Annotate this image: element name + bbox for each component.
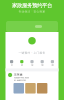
staticText: 保姆 bbox=[21, 64, 23, 66]
button[interactable]: 月嫂 bbox=[27, 60, 37, 66]
button[interactable]: 保姆 bbox=[17, 60, 27, 66]
button[interactable] bbox=[0, 21, 64, 32]
staticText: 月嫂 bbox=[31, 64, 33, 66]
button[interactable]: 维修 bbox=[37, 60, 47, 66]
button[interactable]: 搬家 bbox=[47, 60, 57, 66]
staticText: 专业保洁 · 安心到家 bbox=[18, 10, 45, 13]
staticText: 家政服务预约平台 bbox=[12, 2, 52, 9]
staticText: 保洁、收纳整理与月子照护。 bbox=[14, 79, 27, 81]
staticText: 专业家政服务十年经验，擅长深度 bbox=[14, 77, 29, 79]
staticText: 搬家 bbox=[51, 64, 53, 66]
staticText: 保洁 bbox=[11, 64, 13, 66]
staticText: 王阿姨 bbox=[14, 73, 23, 76]
staticText: 一键预约 · 上门服务 bbox=[18, 51, 45, 54]
staticText: 维修 bbox=[41, 64, 43, 66]
button[interactable]: 保洁 bbox=[6, 60, 17, 66]
